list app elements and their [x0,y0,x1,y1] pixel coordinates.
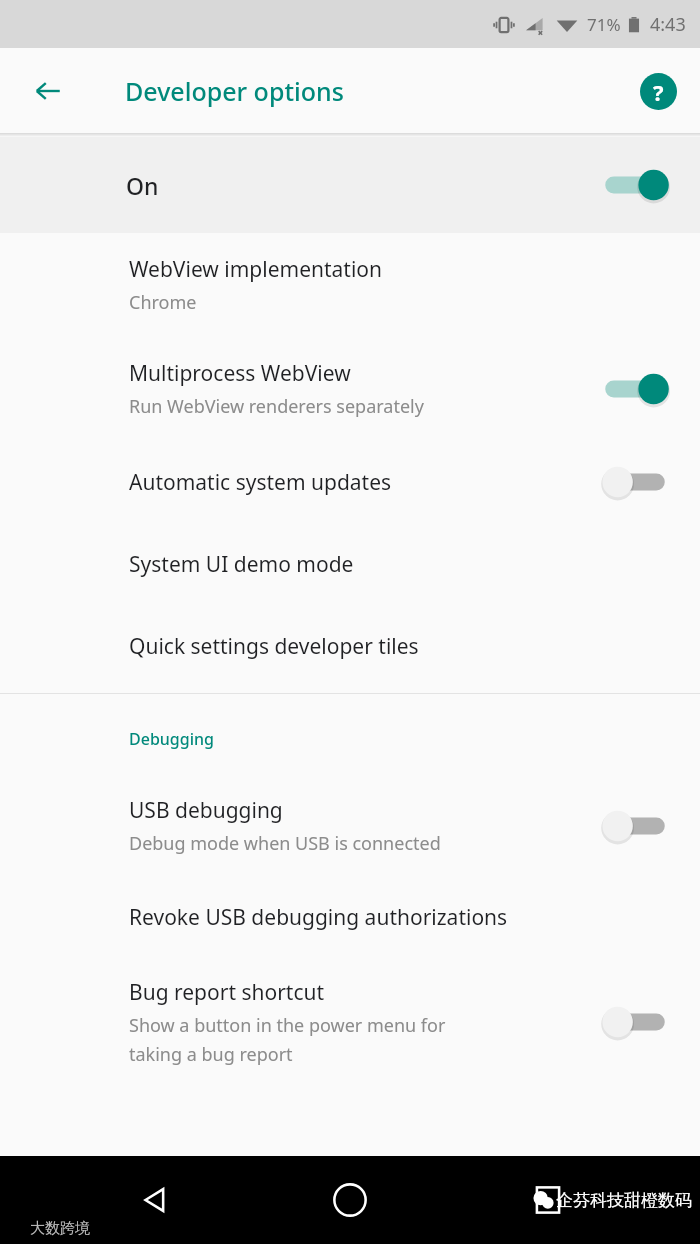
button[interactable]: Back [24,67,72,115]
staticText: Automatic system updates [129,468,392,497]
button[interactable]: Quick settings developer tiles [0,605,700,687]
staticText: Revoke USB debugging authorizations [129,903,508,932]
staticText: taking a bug report [129,1042,293,1067]
staticText: Chrome [129,290,197,315]
button[interactable]: Multiprocess WebView [0,337,700,441]
staticText: USB debugging [129,796,283,825]
staticText: WebView implementation [129,255,383,284]
staticText: Quick settings developer tiles [129,632,419,661]
button[interactable]: Automatic system updates [0,441,700,523]
button[interactable]: Help [636,69,680,113]
button[interactable]: Home [318,1168,382,1232]
staticText: 71% [587,13,621,36]
staticText: 企芬科技甜橙数码 [556,1190,692,1211]
staticText: Developer options [125,74,344,108]
staticText: ? [653,77,664,107]
staticText: Show a button in the power menu for [129,1013,446,1038]
button[interactable]: Recents [516,1168,580,1232]
button[interactable]: Revoke USB debugging authorizations [0,876,700,958]
button[interactable]: On [0,137,700,233]
staticText: Debugging [129,728,214,750]
staticText: 4:43 [650,12,686,37]
staticText: Run WebView renderers separately [129,394,424,419]
staticText: Bug report shortcut [129,978,325,1007]
button[interactable]: Bug report shortcut [0,958,700,1086]
staticText: 大数跨境 [30,1219,90,1238]
button[interactable]: Back [123,1168,187,1232]
button[interactable]: USB debugging [0,776,700,876]
button[interactable]: WebView implementation [0,233,700,337]
button[interactable]: System UI demo mode [0,523,700,605]
staticText: On [126,170,159,201]
staticText: Multiprocess WebView [129,359,351,388]
staticText: System UI demo mode [129,550,354,579]
staticText: Debug mode when USB is connected [129,831,441,856]
